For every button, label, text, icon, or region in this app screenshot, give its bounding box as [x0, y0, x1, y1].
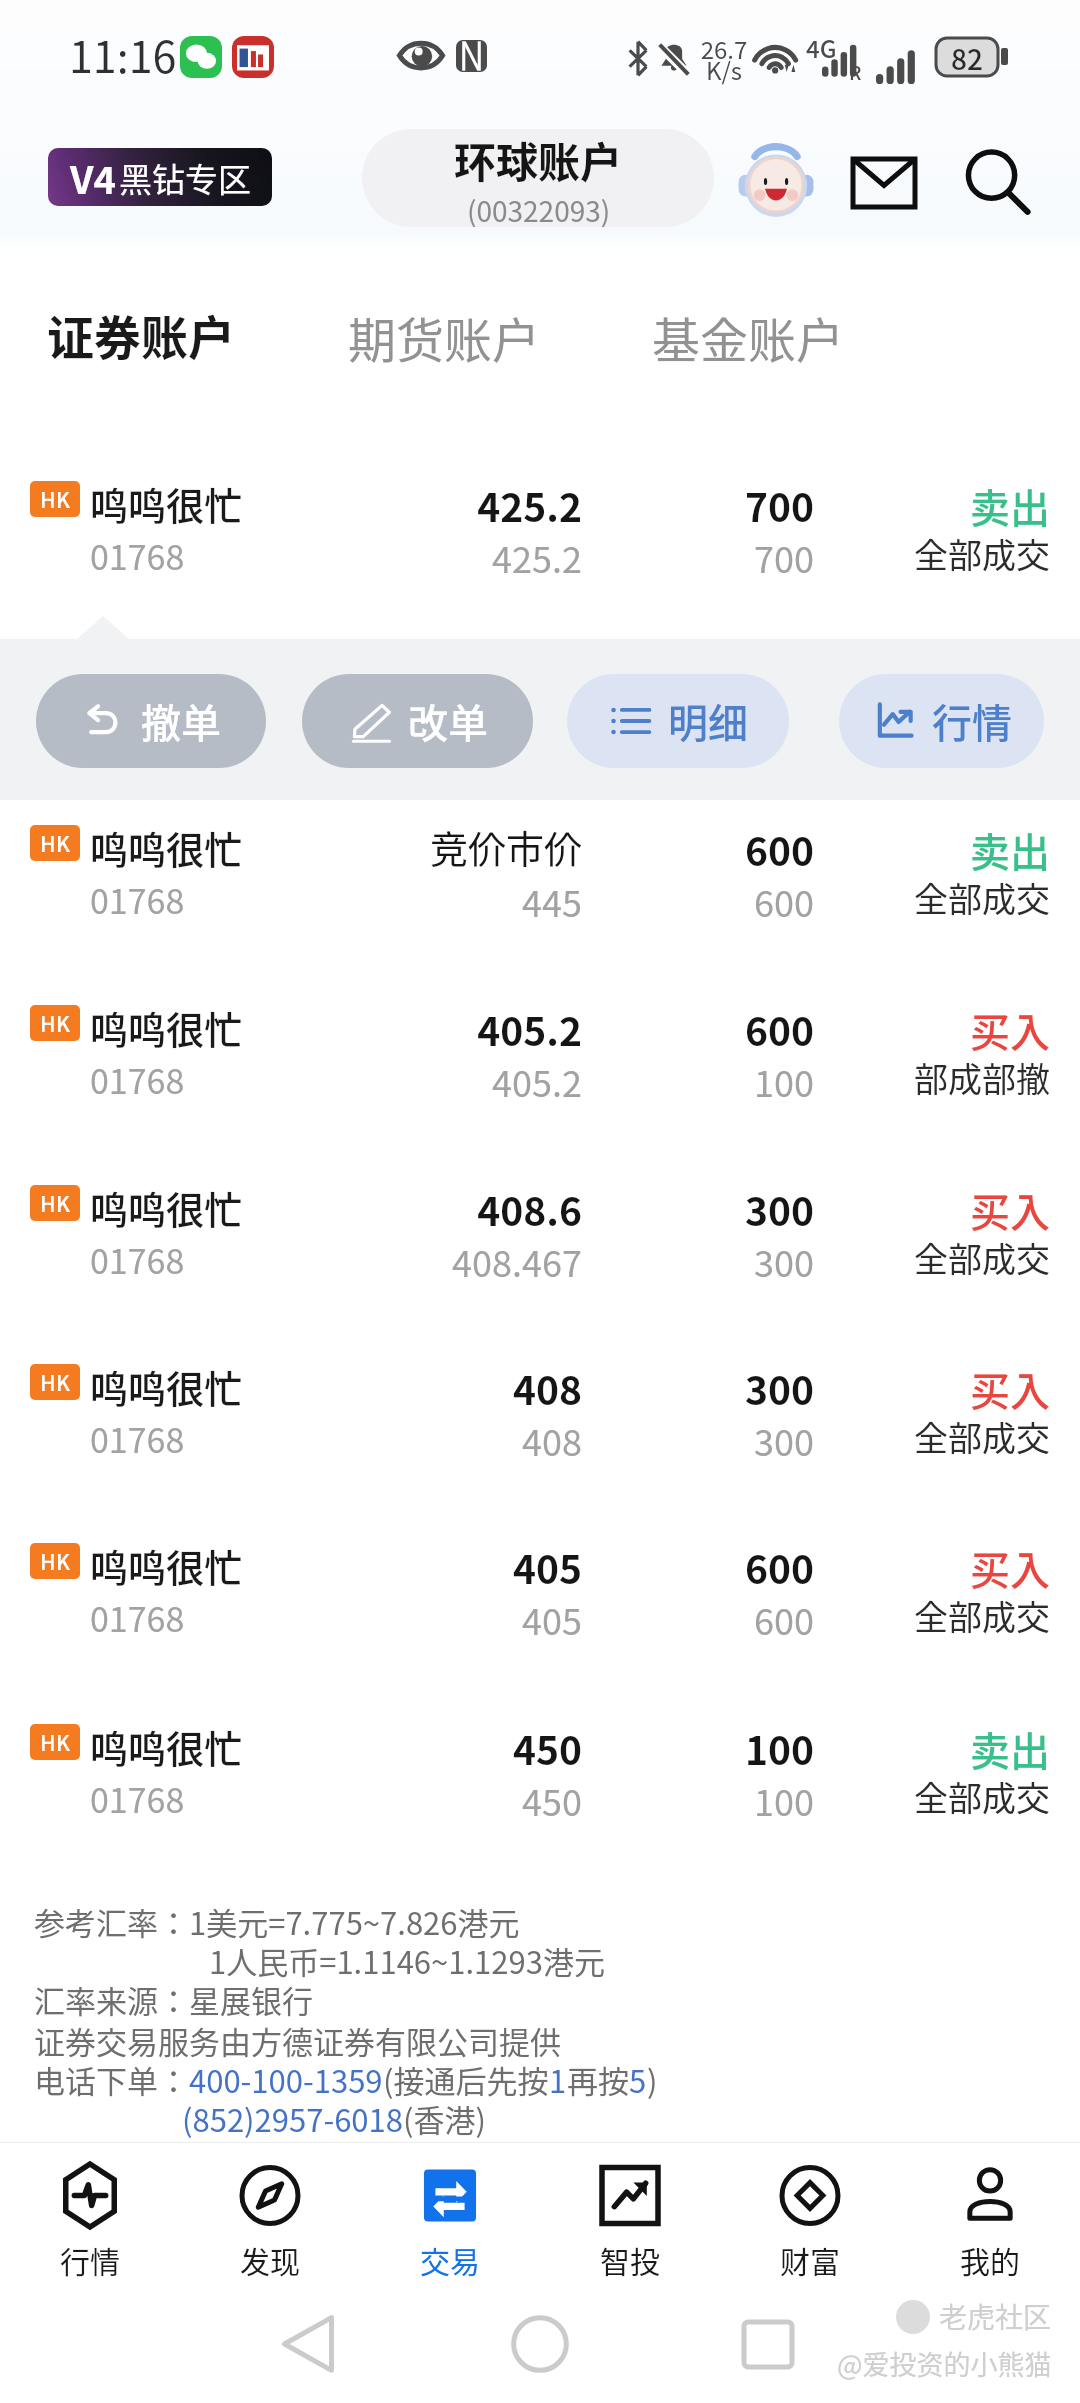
staticText: 撤单 [141, 692, 221, 750]
staticText: 老虎社区 [939, 2296, 1052, 2337]
staticText: 全部成交 [830, 1233, 1050, 1282]
button[interactable]: HK [0, 1352, 1080, 1492]
button[interactable]: 撤单 [36, 674, 266, 768]
staticText: 11:16 [69, 23, 177, 85]
staticText: 300 [600, 1181, 814, 1237]
button[interactable]: 发现 [180, 2143, 360, 2293]
staticText: V4 [70, 150, 116, 205]
staticText: 425.2 [262, 477, 582, 533]
staticText: 全部成交 [830, 1591, 1050, 1640]
staticText: 450 [262, 1774, 582, 1826]
staticText: 600 [600, 1539, 814, 1595]
staticText: 卖出 [830, 821, 1050, 879]
staticText: (852)2957-6018 [182, 2096, 403, 2141]
staticText: 鸣鸣很忙 [90, 1180, 243, 1235]
staticText: 证券交易服务由方德证券有限公司提供 [34, 2018, 561, 2063]
staticText: 发现 [240, 2238, 300, 2281]
staticText: 01768 [90, 531, 185, 580]
staticText: 01768 [90, 1774, 185, 1823]
staticText: 445 [262, 875, 582, 927]
staticText: HK [40, 1367, 71, 1397]
staticText: 鸣鸣很忙 [90, 1538, 243, 1593]
staticText: 300 [600, 1360, 814, 1416]
staticText: HK [40, 1188, 71, 1218]
staticText: 700 [600, 531, 814, 583]
staticText: 财富 [780, 2238, 840, 2281]
button[interactable]: HK [0, 469, 1080, 609]
staticText: 82 [951, 38, 983, 76]
staticText: 01768 [90, 1055, 185, 1104]
staticText: 卖出 [830, 477, 1050, 535]
staticText: 再按 [567, 2057, 629, 2102]
staticText: 405.2 [262, 1001, 582, 1057]
button[interactable]: 我的 [900, 2143, 1080, 2293]
staticText: (00322093) [467, 190, 611, 227]
staticText: 700 [600, 477, 814, 533]
staticText: 鸣鸣很忙 [90, 1719, 243, 1774]
staticText: 100 [600, 1055, 814, 1107]
staticText: (香港) [403, 2096, 486, 2141]
staticText: 全部成交 [830, 873, 1050, 922]
staticText: 600 [600, 1001, 814, 1057]
button[interactable]: Assistant [737, 142, 815, 220]
staticText: 1美元=7.775~7.826港元 [189, 1899, 520, 1944]
staticText: 1人民币=1.1146~1.1293港元 [209, 1938, 605, 1983]
staticText: 600 [600, 1593, 814, 1645]
staticText: 鸣鸣很忙 [90, 1000, 243, 1055]
staticText: 基金账户 [652, 302, 845, 372]
staticText: 405 [262, 1593, 582, 1645]
staticText: 部成部撤 [830, 1053, 1050, 1102]
staticText: 1 [549, 2057, 567, 2102]
staticText: 行情 [932, 692, 1012, 750]
button[interactable]: 基金账户 [652, 302, 845, 372]
button[interactable]: 行情 [839, 674, 1044, 768]
staticText: 我的 [960, 2238, 1020, 2281]
button[interactable]: Messages [845, 144, 923, 222]
staticText: 星展银行 [189, 1977, 313, 2022]
staticText: 买入 [830, 1001, 1050, 1059]
button[interactable]: Back [283, 2316, 333, 2372]
staticText: 鸣鸣很忙 [90, 820, 243, 875]
button[interactable]: HK [0, 1531, 1080, 1671]
staticText: 鸣鸣很忙 [90, 476, 243, 531]
button[interactable]: HK [0, 813, 1080, 953]
button[interactable]: Home [512, 2316, 568, 2372]
staticText: 全部成交 [830, 1412, 1050, 1461]
staticText: 26.7 K/s [699, 31, 749, 87]
staticText: R [849, 58, 862, 86]
staticText: @爱投资的小熊猫 [837, 2344, 1052, 2383]
button[interactable]: 环球账户 [362, 129, 714, 227]
button[interactable]: 证券账户 [47, 300, 235, 368]
staticText: 600 [600, 875, 814, 927]
staticText: 405.2 [262, 1055, 582, 1107]
button[interactable]: 行情 [0, 2143, 180, 2293]
staticText: 300 [600, 1414, 814, 1466]
button[interactable]: Search [955, 140, 1039, 224]
staticText: 600 [600, 821, 814, 877]
staticText: 电话下单： [34, 2057, 189, 2102]
button[interactable]: HK [0, 993, 1080, 1133]
staticText: 01768 [90, 875, 185, 924]
staticText: 425.2 [262, 531, 582, 583]
staticText: 408.6 [262, 1181, 582, 1237]
button[interactable]: V4 [48, 148, 272, 206]
staticText: 卖出 [830, 1720, 1050, 1778]
staticText: 4G [806, 30, 837, 65]
staticText: HK [40, 1546, 71, 1576]
button[interactable]: 明细 [567, 674, 789, 768]
button[interactable]: 智投 [540, 2143, 720, 2293]
staticText: 100 [600, 1720, 814, 1776]
button[interactable]: 财富 [720, 2143, 900, 2293]
staticText: HK [40, 484, 71, 514]
staticText: HK [40, 1008, 71, 1038]
staticText: 450 [262, 1720, 582, 1776]
staticText: 100 [600, 1774, 814, 1826]
staticText: 参考汇率： [34, 1899, 189, 1944]
button[interactable]: 期货账户 [348, 302, 541, 372]
button[interactable]: 改单 [302, 674, 533, 768]
button[interactable]: HK [0, 1173, 1080, 1313]
button[interactable]: Recents [742, 2320, 794, 2369]
button[interactable]: HK [0, 1712, 1080, 1852]
staticText: HK [40, 1727, 71, 1757]
button[interactable]: 交易 [360, 2143, 540, 2293]
